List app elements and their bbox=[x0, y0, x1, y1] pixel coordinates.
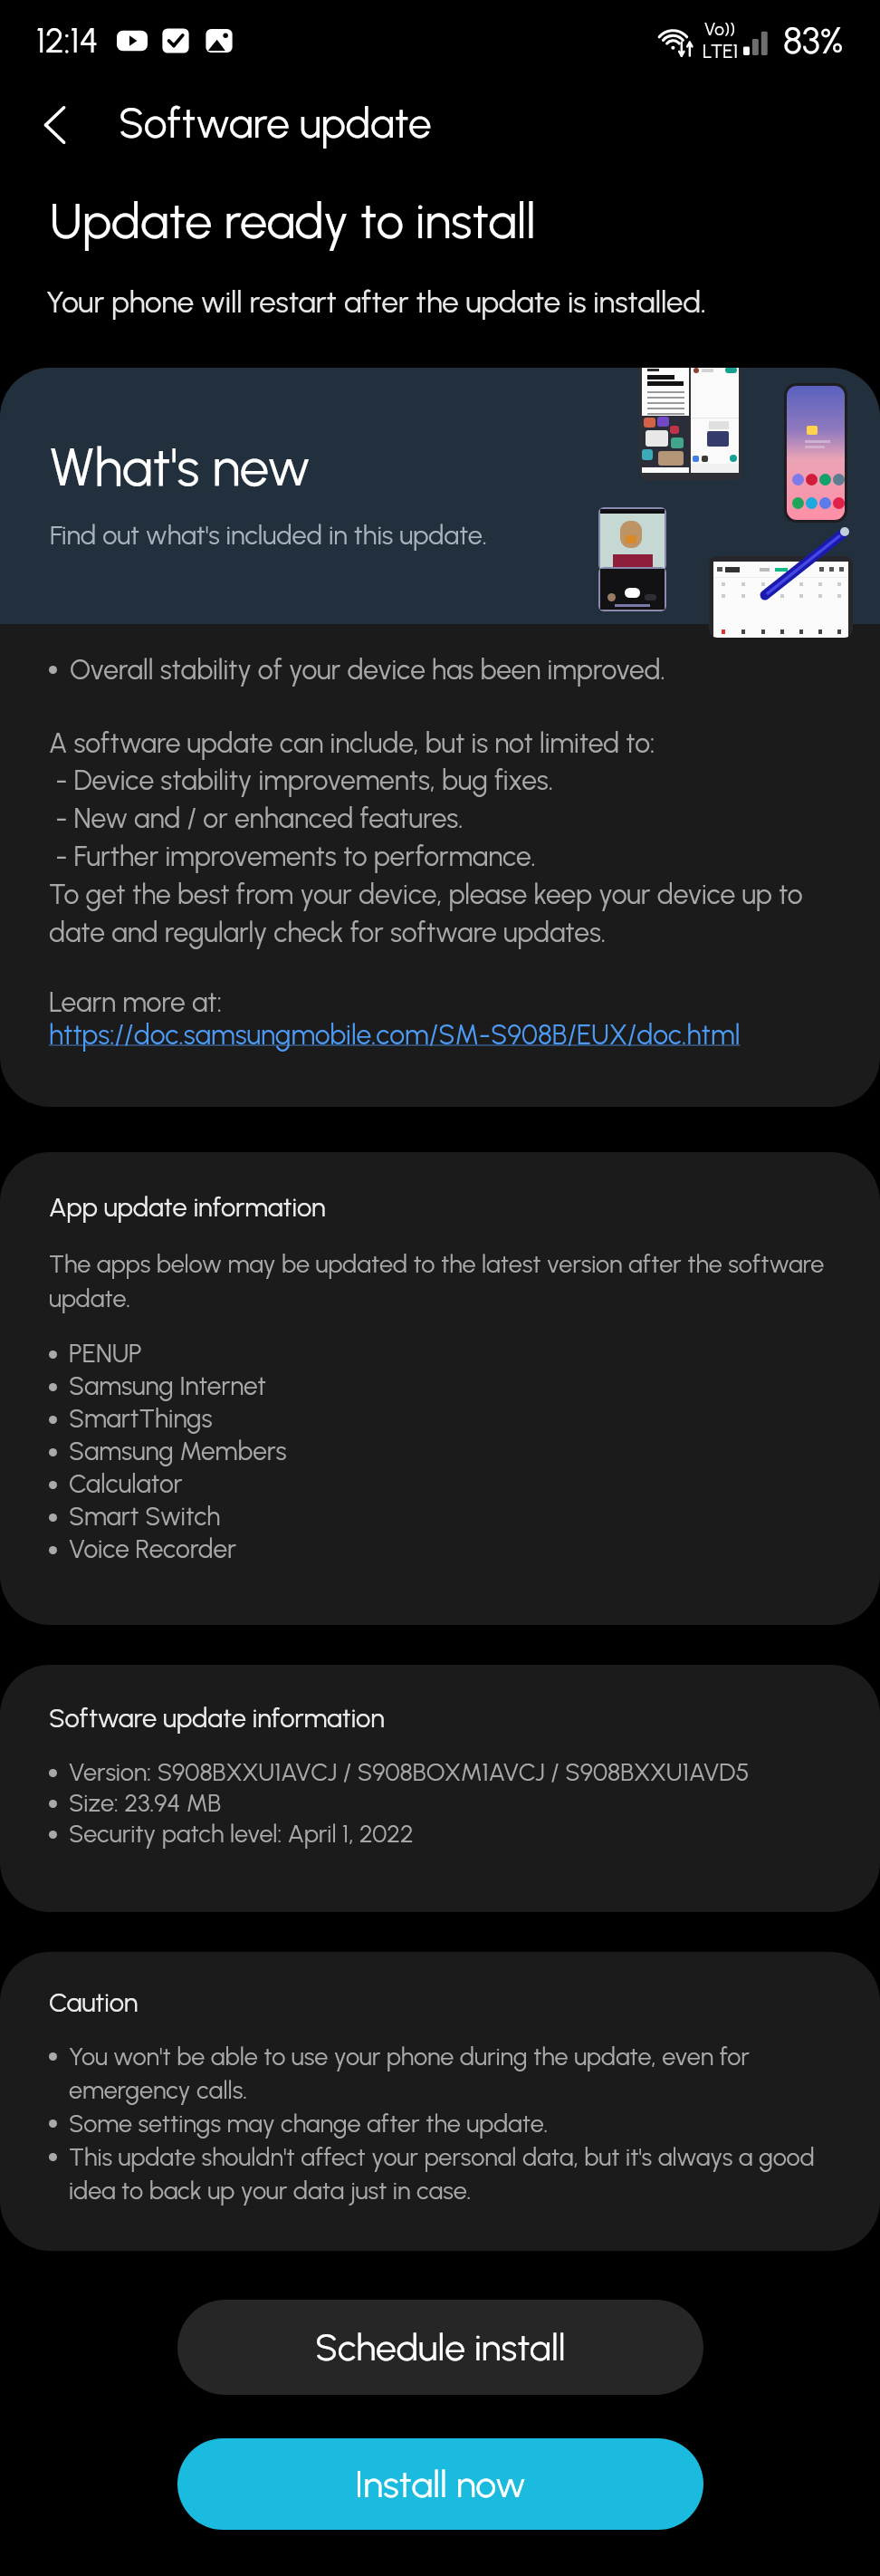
staticText: The apps below may be updated to the lat… bbox=[49, 1249, 825, 1313]
staticText: https://doc.samsungmobile.com/SM-S908B/E… bbox=[49, 1018, 741, 1051]
staticText: SmartThings bbox=[69, 1403, 213, 1434]
button[interactable]: Install now bbox=[177, 2438, 703, 2530]
staticText: A software update can include, but is no… bbox=[49, 726, 803, 949]
staticText: Software update bbox=[119, 98, 432, 148]
staticText: Schedule install bbox=[315, 2325, 566, 2369]
staticText: You won't be able to use your phone duri… bbox=[69, 2042, 751, 2071]
staticText: PENUP bbox=[69, 1338, 142, 1369]
staticText: 83% bbox=[783, 19, 844, 62]
button[interactable]: What's new bbox=[0, 368, 880, 624]
staticText: What's new bbox=[50, 436, 311, 499]
staticText: idea to back up your data just in case. bbox=[69, 2176, 472, 2205]
staticText: Security patch level: April 1, 2022 bbox=[69, 1819, 414, 1848]
staticText: App update information bbox=[49, 1191, 326, 1223]
staticText: Calculator bbox=[69, 1468, 183, 1499]
staticText: Your phone will restart after the update… bbox=[46, 284, 706, 321]
staticText: Size: 23.94 MB bbox=[69, 1788, 222, 1817]
staticText: This update shouldn't affect your person… bbox=[69, 2142, 815, 2171]
staticText: Software update information bbox=[49, 1702, 385, 1734]
staticText: Samsung Members bbox=[69, 1436, 287, 1466]
staticText: Voice Recorder bbox=[69, 1533, 236, 1564]
staticText: Vo)) bbox=[704, 19, 736, 40]
staticText: Smart Switch bbox=[69, 1501, 221, 1532]
staticText: Install now bbox=[355, 2462, 526, 2506]
staticText: emergency calls. bbox=[69, 2075, 248, 2104]
staticText: Caution bbox=[49, 1986, 139, 2018]
staticText: Samsung Internet bbox=[69, 1370, 266, 1401]
staticText: Some settings may change after the updat… bbox=[69, 2109, 549, 2138]
button[interactable]: Schedule install bbox=[177, 2300, 703, 2395]
button[interactable]: Back bbox=[16, 85, 96, 165]
staticText: 12:14 bbox=[36, 20, 99, 62]
staticText: Overall stability of your device has bee… bbox=[70, 653, 665, 686]
staticText: Update ready to install bbox=[50, 192, 536, 251]
staticText: Version: S908BXXU1AVCJ / S908BOXM1AVCJ /… bbox=[69, 1757, 750, 1786]
staticText: Learn more at: bbox=[49, 985, 223, 1018]
staticText: LTE1 bbox=[703, 40, 738, 62]
staticText: Find out what's included in this update. bbox=[50, 519, 487, 551]
